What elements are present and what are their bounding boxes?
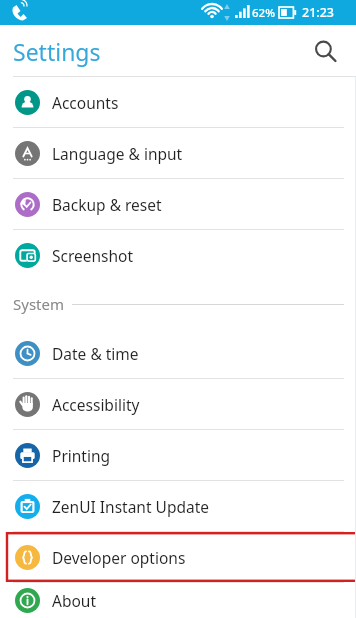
button[interactable]: Search [304,30,346,72]
button[interactable]: Screenshot [0,230,356,280]
button[interactable]: Printing [0,430,356,480]
button[interactable]: Developer options [0,532,356,582]
staticText: System [13,294,64,314]
staticText: 62% [252,5,275,21]
staticText: Screenshot [52,245,134,266]
staticText: About [52,590,96,611]
button[interactable]: ZenUI Instant Update [0,481,356,531]
staticText: 21:23 [302,4,335,21]
staticText: ZenUI Instant Update [52,496,209,517]
staticText: Accessibility [52,394,140,415]
button[interactable]: Date & time [0,328,356,378]
button[interactable]: Language & input [0,128,356,178]
staticText: Language & input [52,143,183,164]
button[interactable]: Backup & reset [0,179,356,229]
staticText: Date & time [52,343,139,364]
button[interactable]: Accounts [0,77,356,127]
staticText: Printing [52,445,111,466]
button[interactable]: About [0,583,356,618]
staticText: Developer options [52,547,186,568]
button[interactable]: Accessibility [0,379,356,429]
staticText: Backup & reset [52,194,162,215]
staticText: Accounts [52,92,119,113]
staticText: Settings [13,36,101,67]
